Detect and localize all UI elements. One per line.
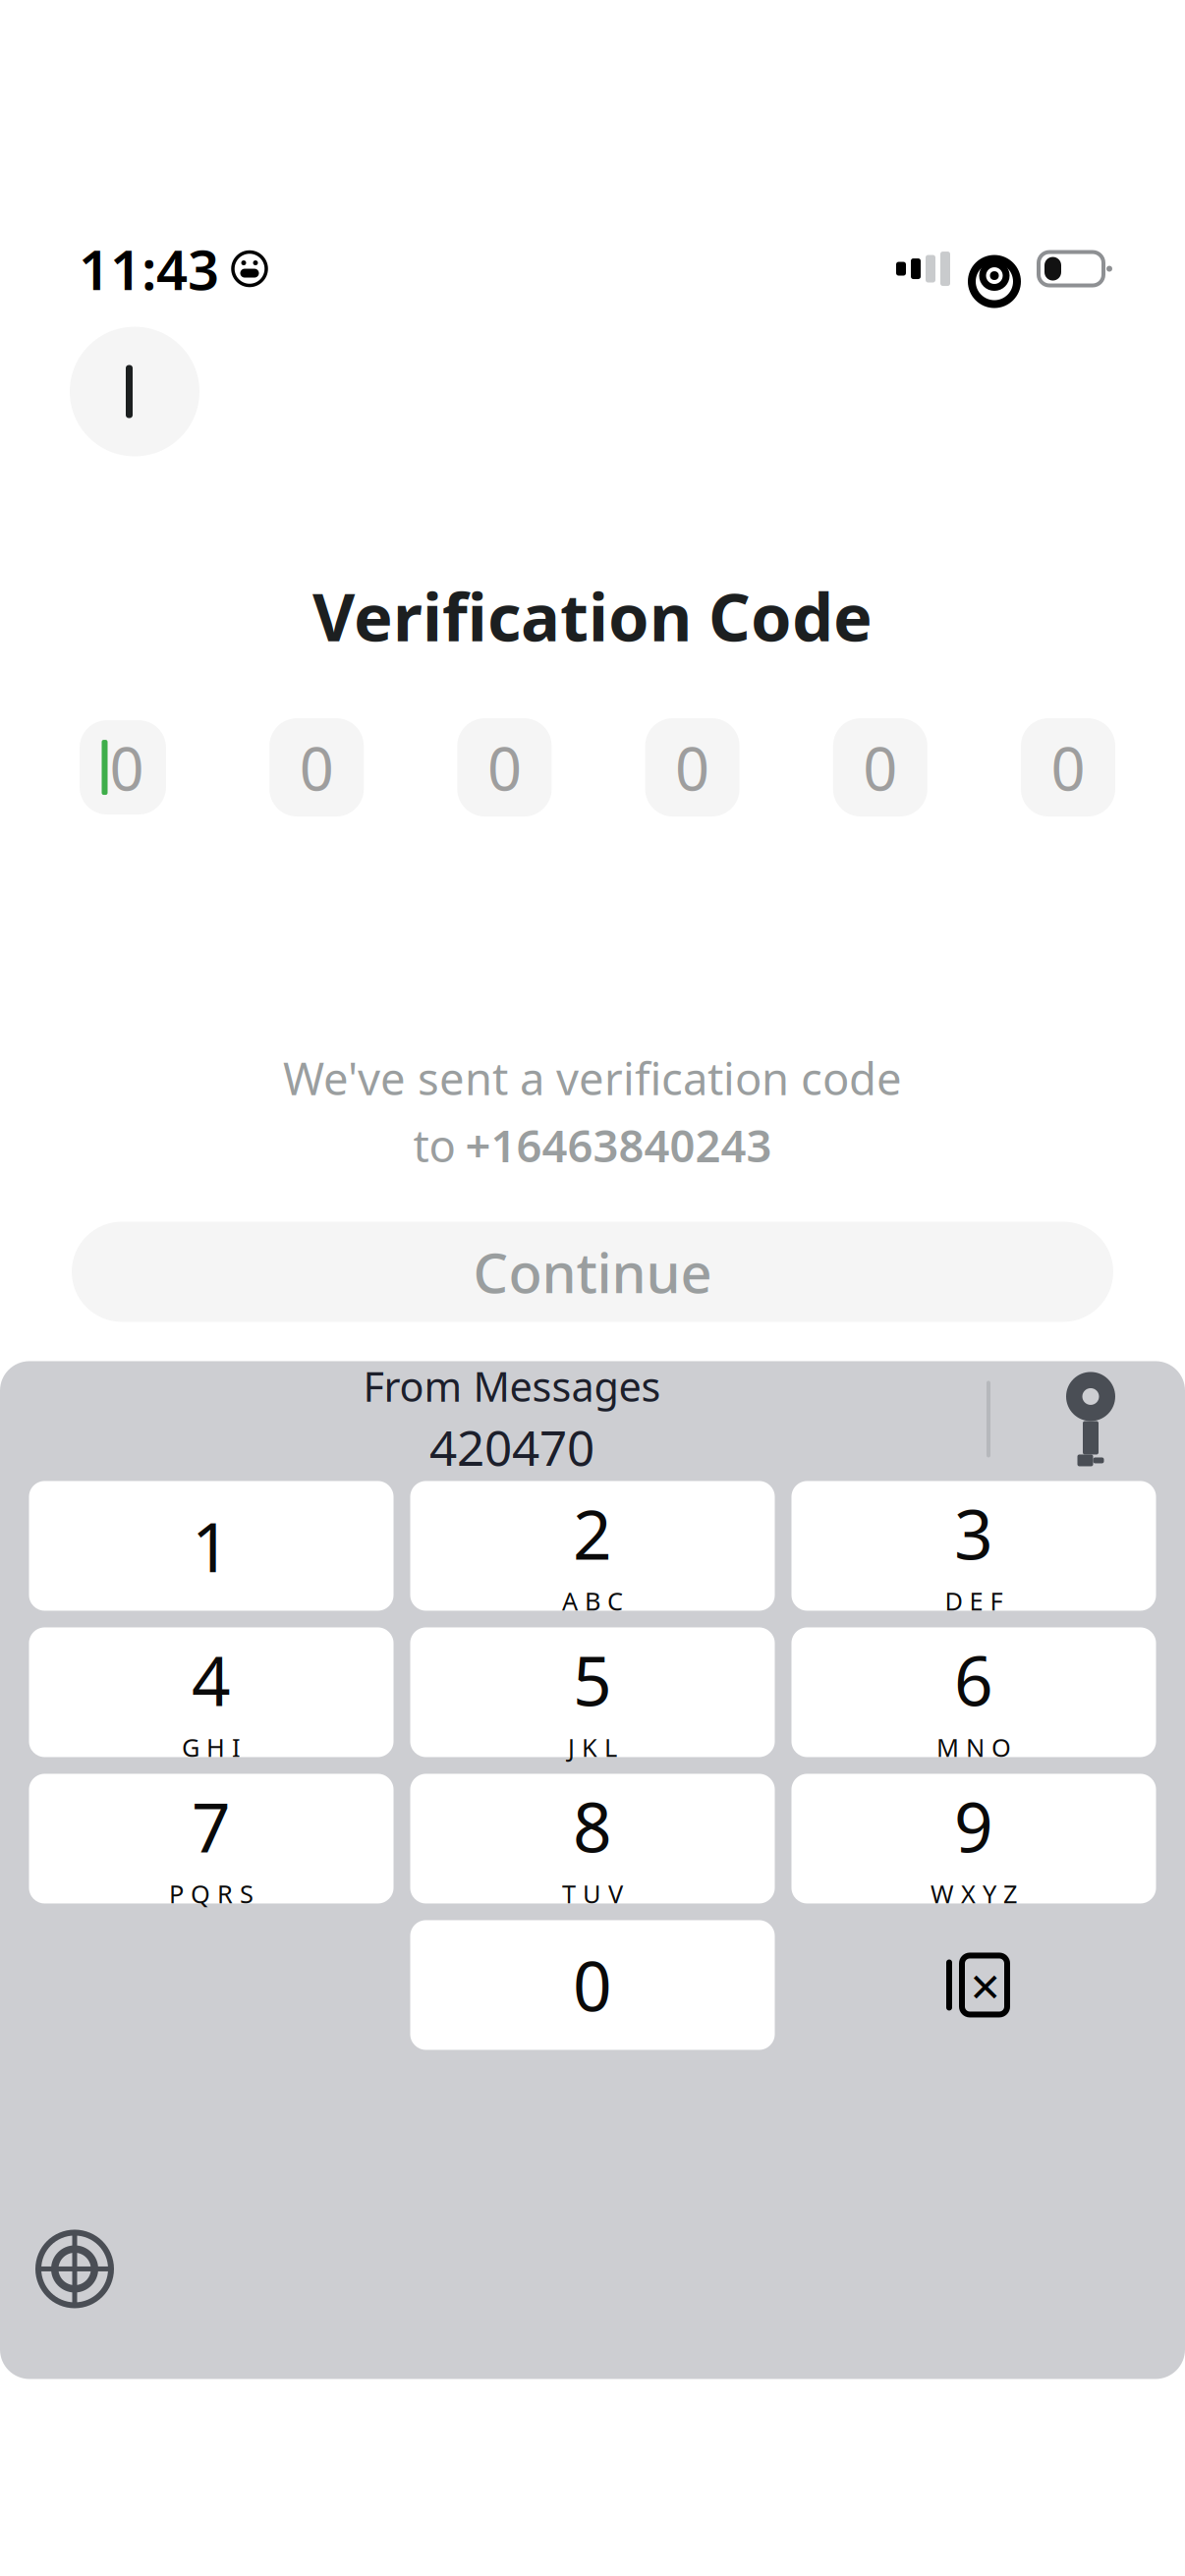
staticText: T U V [562,1877,623,1910]
staticText: 0 [675,727,710,807]
button[interactable]: 2 [410,1481,775,1611]
staticText: A B C [562,1584,623,1617]
staticText: We've sent a verification code [283,1048,902,1108]
button[interactable]: 7 [29,1774,394,1904]
staticText: 0 [299,727,334,807]
staticText: 420470 [429,1415,594,1479]
staticText: +16463840243 [465,1115,772,1175]
button[interactable]: 1 [29,1481,394,1611]
staticText: 4 [192,1634,231,1725]
button[interactable]: Passwords [1044,1370,1138,1468]
button[interactable]: 5 [410,1627,775,1757]
button[interactable]: 9 [791,1774,1156,1904]
button[interactable]: 6 [791,1627,1156,1757]
staticText: 5 [573,1634,612,1725]
staticText: 0 [573,1940,612,2030]
button[interactable]: 8 [410,1774,775,1904]
staticText: 7 [192,1781,231,1871]
button[interactable]: Code digit [833,718,927,817]
button[interactable]: Code digit [645,718,739,817]
staticText: D E F [945,1584,1003,1617]
button[interactable]: Code digit [269,718,364,817]
button[interactable]: 0 [410,1920,775,2050]
staticText: P Q R S [169,1877,254,1910]
button[interactable]: 4 [29,1627,394,1757]
staticText: 9 [954,1781,993,1871]
staticText: 0 [1051,727,1085,807]
staticText: 2 [573,1488,612,1579]
staticText: 6 [954,1634,993,1725]
staticText: Verification Code [312,572,873,659]
staticText: to [413,1115,455,1175]
staticText: 1 [192,1501,231,1591]
staticText: M N O [936,1731,1011,1764]
button[interactable]: Code digit [1021,718,1115,817]
staticText: From Messages [363,1359,661,1413]
button[interactable]: Code digit 1 [70,710,176,824]
staticText: 3 [954,1488,993,1579]
staticText: × [970,1950,1001,2020]
staticText: W X Y Z [931,1877,1017,1910]
staticText: 0 [863,727,897,807]
staticText: 0 [110,727,144,807]
button[interactable]: Delete [791,1920,1156,2050]
button[interactable]: 3 [791,1481,1156,1611]
button[interactable]: Back [70,327,199,456]
staticText: Continue [473,1235,712,1308]
staticText: 8 [573,1781,612,1871]
button[interactable]: Code digit [457,718,552,817]
staticText: G H I [182,1731,241,1764]
staticText: 11:43 [79,232,219,305]
staticText: 0 [487,727,522,807]
button[interactable]: Continue [72,1222,1113,1322]
button[interactable]: Next keyboard [24,2218,126,2320]
button[interactable]: From Messages [94,1370,930,1468]
staticText: J K L [568,1731,617,1764]
